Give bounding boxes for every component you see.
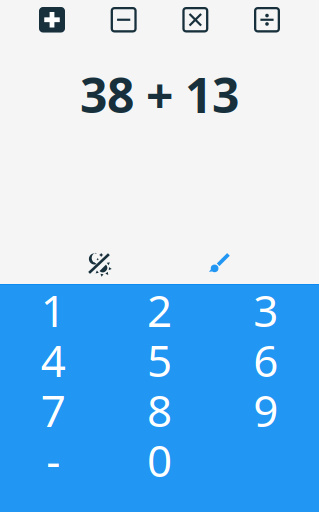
staticText: 9 — [253, 381, 278, 439]
staticText: 8 — [147, 381, 172, 439]
button[interactable]: Toggle appearance — [87, 251, 111, 275]
button[interactable]: Theme colour — [207, 251, 231, 275]
button[interactable]: 0 — [106, 435, 213, 485]
button[interactable]: 5 — [106, 335, 213, 385]
staticText: 3 — [253, 281, 278, 339]
staticText: 1 — [41, 281, 66, 339]
staticText: 0 — [147, 431, 172, 489]
button[interactable]: 4 — [0, 335, 106, 385]
staticText: 2 — [147, 281, 172, 339]
button[interactable]: Multiplication — [182, 7, 208, 32]
button[interactable]: Addition — [39, 7, 65, 32]
button[interactable]: Division — [254, 7, 280, 32]
staticText: 5 — [147, 331, 172, 389]
button[interactable]: 3 — [213, 285, 319, 335]
staticText: 6 — [253, 331, 278, 389]
button[interactable]: Subtraction — [111, 7, 137, 32]
button[interactable]: 8 — [106, 385, 213, 435]
button[interactable]: 6 — [213, 335, 319, 385]
button[interactable]: 9 — [213, 385, 319, 435]
staticText: 38 + 13 — [80, 63, 239, 126]
staticText: 4 — [41, 331, 66, 389]
staticText: - — [46, 431, 60, 489]
button[interactable]: 7 — [0, 385, 106, 435]
button[interactable]: - — [0, 435, 106, 485]
staticText: 7 — [41, 381, 66, 439]
button[interactable]: 1 — [0, 285, 106, 335]
button[interactable]: 2 — [106, 285, 213, 335]
